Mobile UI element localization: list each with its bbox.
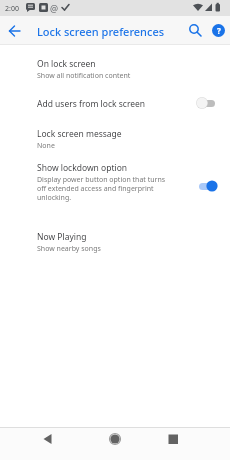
button[interactable]: On lock screen [0, 52, 230, 86]
staticText: Show all notification content [37, 71, 131, 81]
button[interactable] [188, 23, 203, 38]
staticText: Display power button option that turns o… [37, 175, 166, 202]
button[interactable]: Now Playing [0, 223, 230, 259]
staticText: Lock screen message [37, 128, 122, 140]
button[interactable] [107, 431, 123, 447]
staticText: Show lockdown option [37, 162, 128, 174]
button[interactable]: Show lockdown option [0, 155, 230, 207]
staticText: On lock screen [37, 58, 96, 70]
button[interactable] [165, 431, 181, 447]
button[interactable] [40, 431, 56, 447]
staticText: Now Playing [37, 231, 87, 243]
staticText: 2:00 [5, 4, 19, 14]
staticText: Show nearby songs [37, 244, 101, 254]
staticText: Add users from lock screen [37, 98, 146, 110]
staticText: Lock screen preferences [37, 24, 165, 39]
button[interactable]: ? [212, 24, 225, 37]
button[interactable]: Lock screen message [0, 120, 230, 155]
staticText: ? [217, 25, 221, 36]
button[interactable]: Add users from lock screen [0, 86, 230, 120]
button[interactable] [6, 23, 22, 39]
staticText: None [37, 141, 55, 151]
staticText: @ [50, 2, 59, 14]
